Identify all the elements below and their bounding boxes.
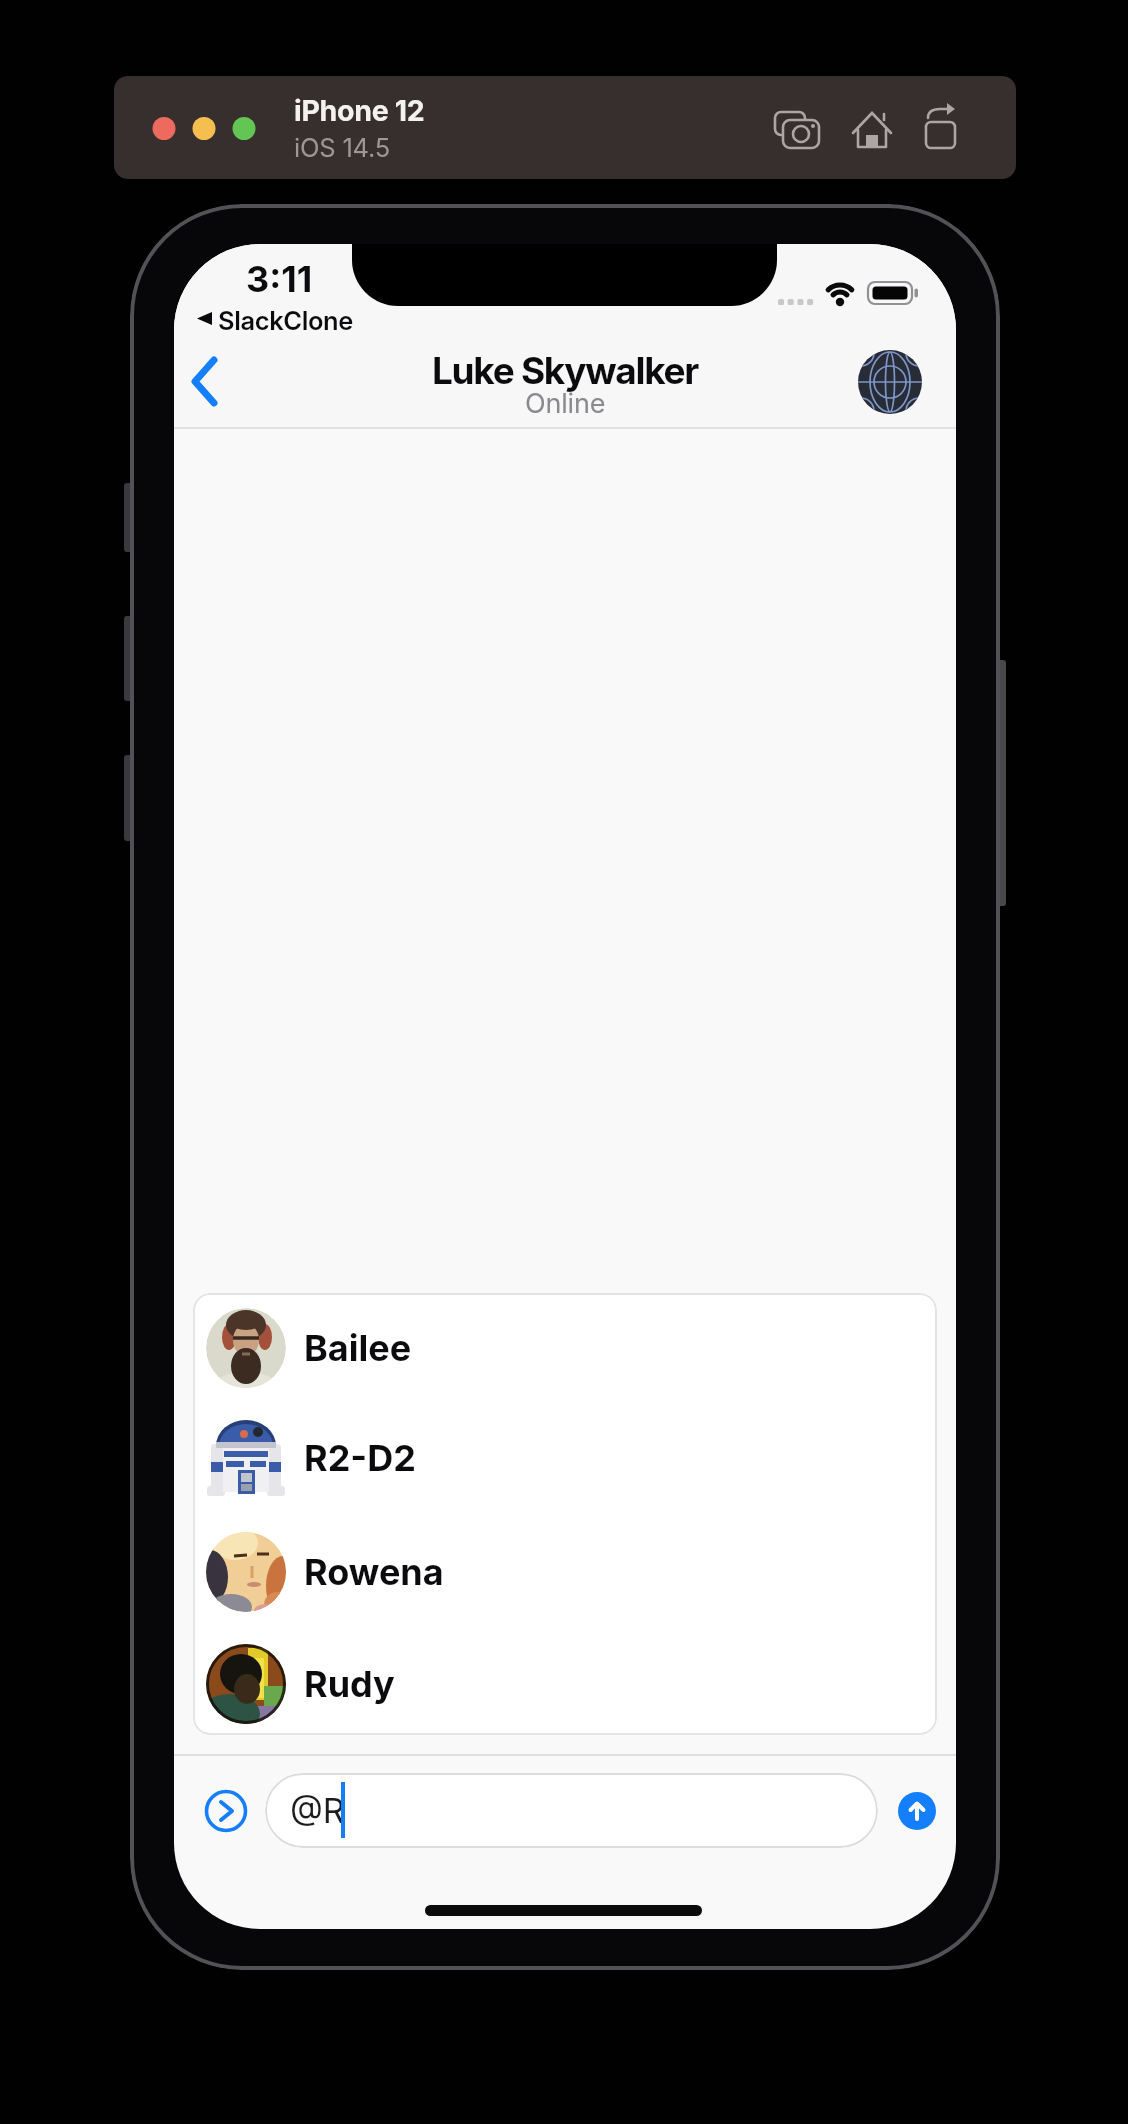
button[interactable] [858, 350, 922, 414]
staticText: Online [525, 387, 606, 420]
staticText: Rudy [304, 1662, 395, 1706]
staticText: @R [290, 1790, 345, 1831]
staticText: iOS 14.5 [294, 132, 391, 163]
button[interactable]: Rowena [193, 1517, 937, 1627]
staticText: SlackClone [218, 305, 353, 336]
staticText: iPhone 12 [294, 93, 425, 127]
button[interactable] [180, 348, 240, 416]
staticText: Bailee [304, 1326, 412, 1370]
staticText: Rowena [304, 1550, 444, 1594]
button[interactable]: R2-D2 [193, 1403, 937, 1513]
button[interactable]: Rudy [193, 1629, 937, 1735]
button[interactable]: Bailee [193, 1293, 937, 1403]
button[interactable] [898, 1792, 936, 1830]
staticText: Luke Skywalker [432, 348, 699, 393]
button[interactable] [203, 1788, 249, 1834]
button[interactable]: @R [265, 1773, 878, 1848]
staticText: 3:11 [246, 257, 313, 301]
staticText: R2-D2 [304, 1436, 416, 1480]
